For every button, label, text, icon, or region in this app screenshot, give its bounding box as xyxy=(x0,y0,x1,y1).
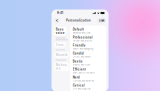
staticText: Friendly xyxy=(73,44,86,47)
staticText: Candid xyxy=(73,52,84,55)
button[interactable]: Friendly xyxy=(70,43,106,51)
button[interactable]: Bestie xyxy=(70,59,106,67)
staticText: Nerd xyxy=(73,76,80,79)
staticText: Playful and close xyxy=(73,63,90,66)
staticText: Nickname xyxy=(56,63,68,70)
button[interactable]: Professional xyxy=(70,35,106,43)
staticText: Warm and easygoing xyxy=(73,47,93,50)
staticText: Save xyxy=(99,19,104,22)
staticText: 9:41 xyxy=(57,11,63,15)
staticText: Cynical xyxy=(73,84,85,87)
button[interactable]: Candid xyxy=(70,51,106,59)
staticText: Short and to the point xyxy=(73,71,95,74)
staticText: Tone xyxy=(56,43,64,47)
staticText: Warmth xyxy=(56,53,68,57)
button[interactable]: Save xyxy=(97,18,106,23)
staticText: Efficient xyxy=(73,68,86,71)
staticText: Bestie xyxy=(73,60,83,63)
button[interactable]: Nerd xyxy=(70,75,106,83)
button[interactable]: Efficient xyxy=(70,67,106,75)
staticText: Direct and honest xyxy=(73,55,91,58)
staticText: Balanced and clear xyxy=(73,31,91,34)
staticText: Default xyxy=(73,28,84,31)
button[interactable]: Default xyxy=(70,27,106,35)
staticText: Professional xyxy=(73,36,93,39)
staticText: Formal and precise xyxy=(73,39,92,42)
staticText: Personalization xyxy=(66,19,91,22)
button[interactable]: Cynical xyxy=(70,83,106,91)
staticText: Curious and detailed xyxy=(73,79,94,82)
button[interactable]: Back xyxy=(54,17,60,24)
staticText: Base voice xyxy=(56,28,65,35)
staticText: Dry and sceptical xyxy=(73,87,91,90)
